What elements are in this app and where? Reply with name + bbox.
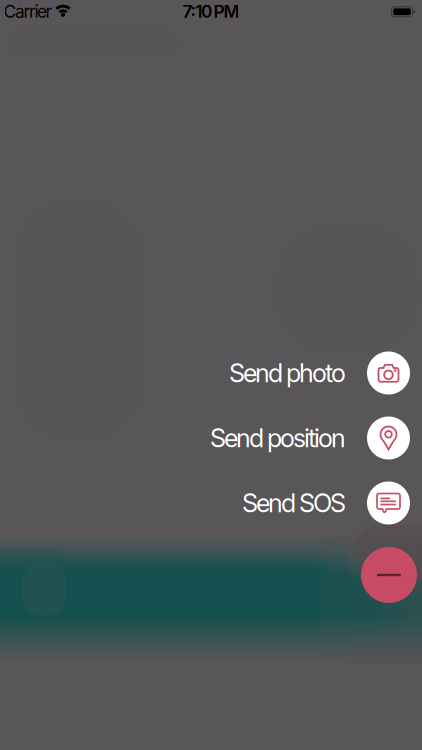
staticText: Send SOS	[242, 488, 346, 518]
staticText: Carrier	[3, 1, 52, 22]
staticText: Send position	[210, 423, 346, 453]
button[interactable]: Close	[361, 547, 417, 603]
button[interactable]: Send position	[210, 416, 410, 459]
staticText: Send photo	[229, 358, 346, 388]
button[interactable]: Send SOS	[242, 481, 410, 524]
button[interactable]: Send photo	[229, 351, 410, 394]
staticText: 7:10 PM	[183, 1, 239, 22]
